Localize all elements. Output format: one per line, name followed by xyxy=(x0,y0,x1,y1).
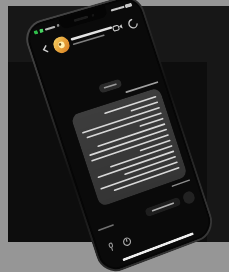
button[interactable]: Back xyxy=(37,41,54,58)
button[interactable] xyxy=(70,87,188,207)
button[interactable]: Video call xyxy=(109,19,126,36)
button[interactable]: Voice input xyxy=(104,239,119,254)
button[interactable]: Contact avatar xyxy=(51,35,72,55)
button[interactable]: Power xyxy=(119,234,133,249)
button[interactable]: More options xyxy=(181,190,196,205)
button[interactable]: Call xyxy=(124,15,140,31)
button[interactable] xyxy=(144,197,181,217)
